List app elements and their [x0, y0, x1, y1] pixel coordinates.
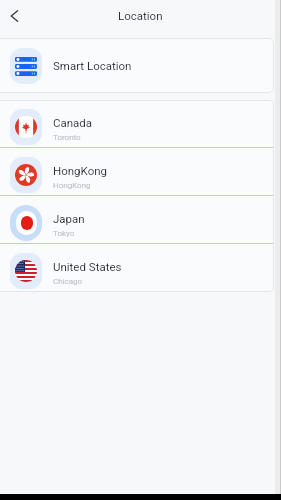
staticText: Toronto — [53, 133, 81, 142]
staticText: Chicago — [53, 277, 83, 286]
staticText: Tokyo — [53, 229, 75, 238]
button[interactable]: Smart Location — [0, 38, 274, 93]
staticText: HongKong — [53, 164, 108, 177]
button[interactable]: United States — [0, 244, 274, 292]
staticText: United States — [53, 260, 122, 273]
button[interactable]: HongKong — [0, 148, 274, 196]
staticText: HongKong — [53, 181, 91, 190]
staticText: Japan — [53, 212, 85, 225]
button[interactable]: Back — [0, 1, 30, 31]
button[interactable]: Japan — [0, 196, 274, 244]
button[interactable]: Canada — [0, 100, 274, 148]
staticText: Smart Location — [53, 59, 132, 72]
staticText: Canada — [53, 116, 93, 129]
staticText: Location — [118, 9, 163, 22]
